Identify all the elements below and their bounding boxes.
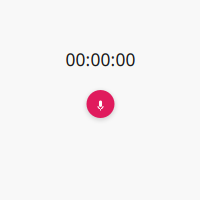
staticText: 00:00:00 bbox=[65, 48, 135, 71]
button[interactable]: Record bbox=[86, 90, 114, 118]
